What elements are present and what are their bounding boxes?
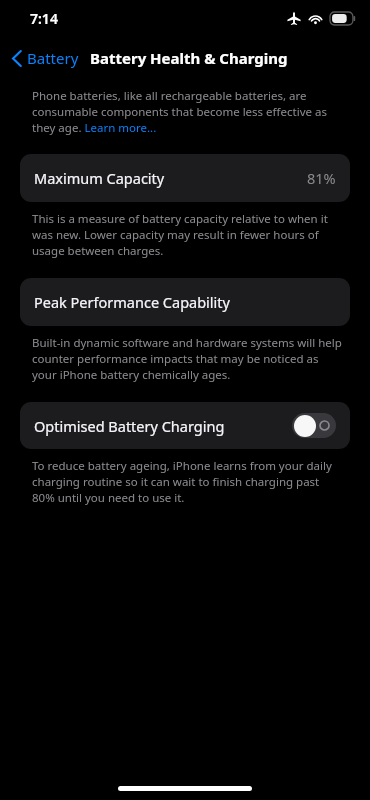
staticText: Optimised Battery Charging — [34, 416, 225, 436]
staticText: 7:14 — [30, 9, 58, 28]
staticText: This is a measure of battery capacity re… — [32, 211, 334, 259]
button[interactable]: Battery — [8, 45, 83, 71]
button[interactable]: Optimised Battery Charging toggle — [292, 413, 336, 438]
staticText: 81% — [307, 168, 336, 188]
staticText: Phone batteries, like all rechargeable b… — [32, 88, 342, 136]
staticText: Peak Performance Capability — [34, 292, 230, 312]
staticText: Battery — [27, 48, 79, 68]
staticText: Battery Health & Charging — [90, 48, 288, 68]
button[interactable]: Optimised Battery Charging — [20, 402, 350, 449]
staticText: Built-in dynamic software and hardware s… — [32, 335, 342, 383]
staticText: Maximum Capacity — [34, 168, 165, 188]
button[interactable]: Peak Performance Capability — [20, 278, 350, 326]
staticText: To reduce battery ageing, iPhone learns … — [32, 458, 344, 506]
button[interactable]: Maximum Capacity — [20, 154, 350, 202]
